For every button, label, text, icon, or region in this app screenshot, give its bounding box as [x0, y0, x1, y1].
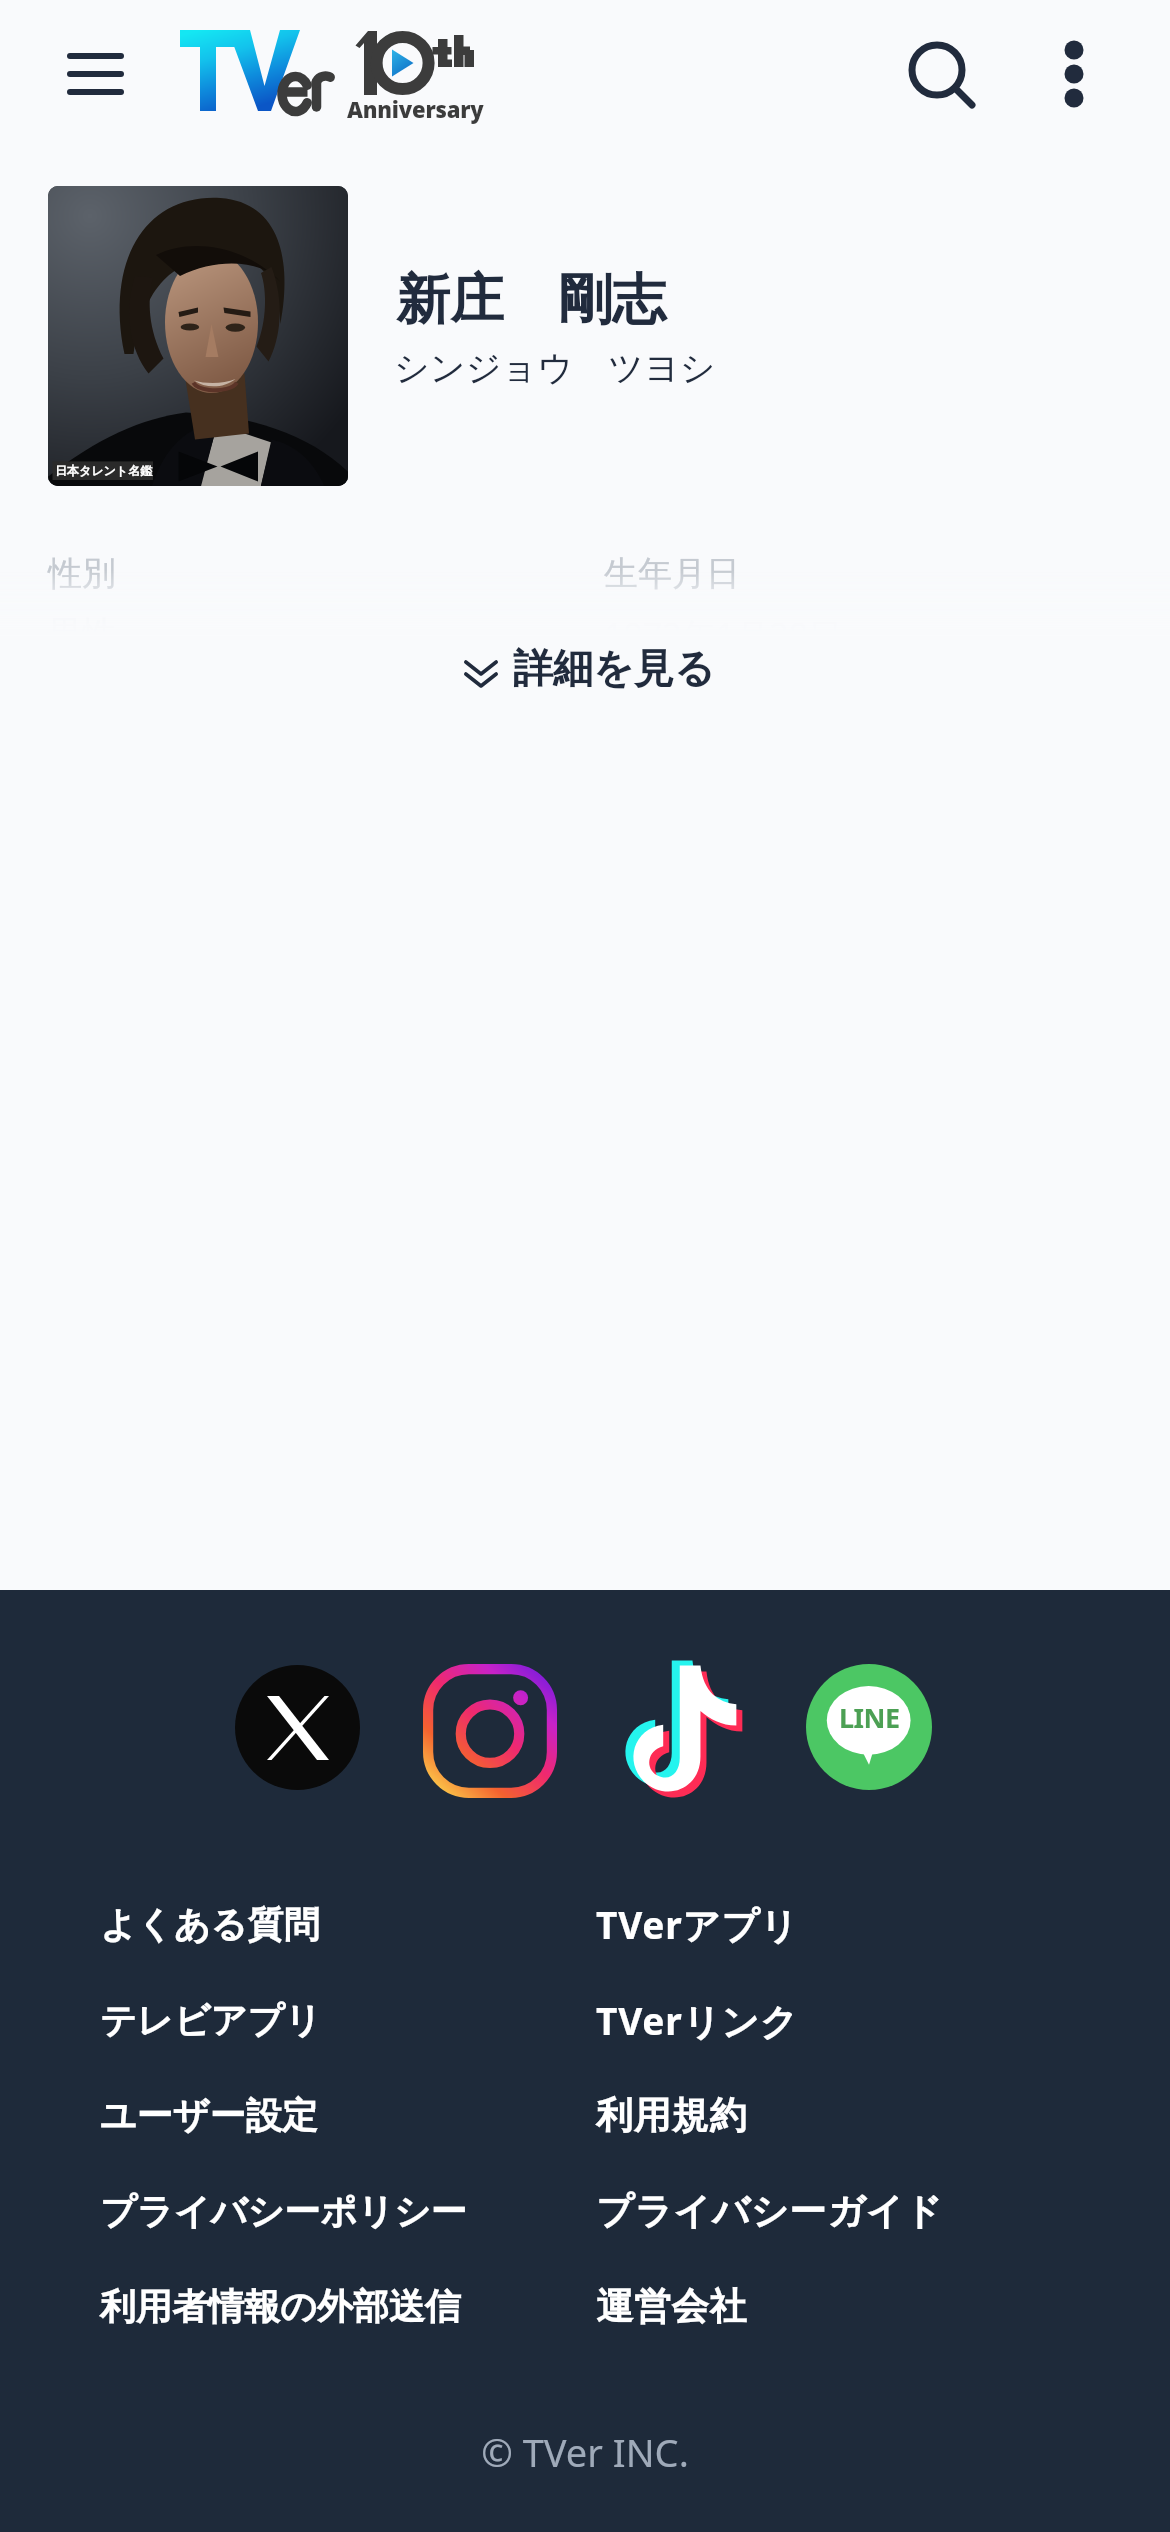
button[interactable]: 運営会社: [576, 2268, 996, 2344]
staticText: 生年月日: [604, 552, 740, 595]
staticText: シンジョウ ツヨシ: [394, 343, 716, 391]
button[interactable]: テレビアプリ: [80, 1982, 580, 2058]
staticText: 運営会社: [596, 2283, 748, 2330]
button[interactable]: 詳細を見る: [0, 620, 1170, 720]
staticText: LINE: [839, 1699, 900, 1736]
staticText: © TVer INC.: [0, 2426, 1170, 2478]
staticText: 新庄 剛志: [396, 260, 666, 334]
button[interactable]: ユーザー設定: [80, 2077, 580, 2153]
staticText: ユーザー設定: [100, 2093, 318, 2138]
staticText: TVerアプリ: [596, 1899, 799, 1950]
button[interactable]: よくある質問: [80, 1886, 580, 1962]
staticText: 詳細を見る: [513, 643, 715, 693]
staticText: 利用者情報の外部送信: [100, 2284, 461, 2329]
button[interactable]: TikTok: [608, 1660, 746, 1798]
button[interactable]: X: [235, 1665, 360, 1790]
staticText: 性別: [48, 552, 116, 595]
button[interactable]: TVerアプリ: [576, 1886, 996, 1962]
staticText: テレビアプリ: [100, 1998, 322, 2043]
staticText: プライバシーポリシー: [100, 2189, 467, 2234]
staticText: よくある質問: [100, 1902, 320, 1947]
button[interactable]: Menu: [40, 26, 150, 122]
staticText: 利用規約: [596, 2092, 748, 2139]
staticText: 1972年1月28日: [604, 612, 843, 658]
button[interactable]: Instagram: [422, 1663, 558, 1799]
button[interactable]: プライバシーガイド: [576, 2173, 996, 2249]
button[interactable]: TVerリンク: [576, 1982, 996, 2058]
button[interactable]: LINE: [806, 1664, 932, 1790]
button[interactable]: プライバシーポリシー: [80, 2173, 580, 2249]
staticText: 日本タレント名鑑: [55, 463, 153, 478]
button[interactable]: More options: [1016, 12, 1132, 128]
staticText: Anniversary: [347, 94, 484, 124]
button[interactable]: Search: [880, 12, 998, 130]
button[interactable]: 利用者情報の外部送信: [80, 2268, 580, 2344]
staticText: プライバシーガイド: [596, 2188, 944, 2235]
staticText: TVerリンク: [596, 1995, 799, 2046]
button[interactable]: 利用規約: [576, 2077, 996, 2153]
